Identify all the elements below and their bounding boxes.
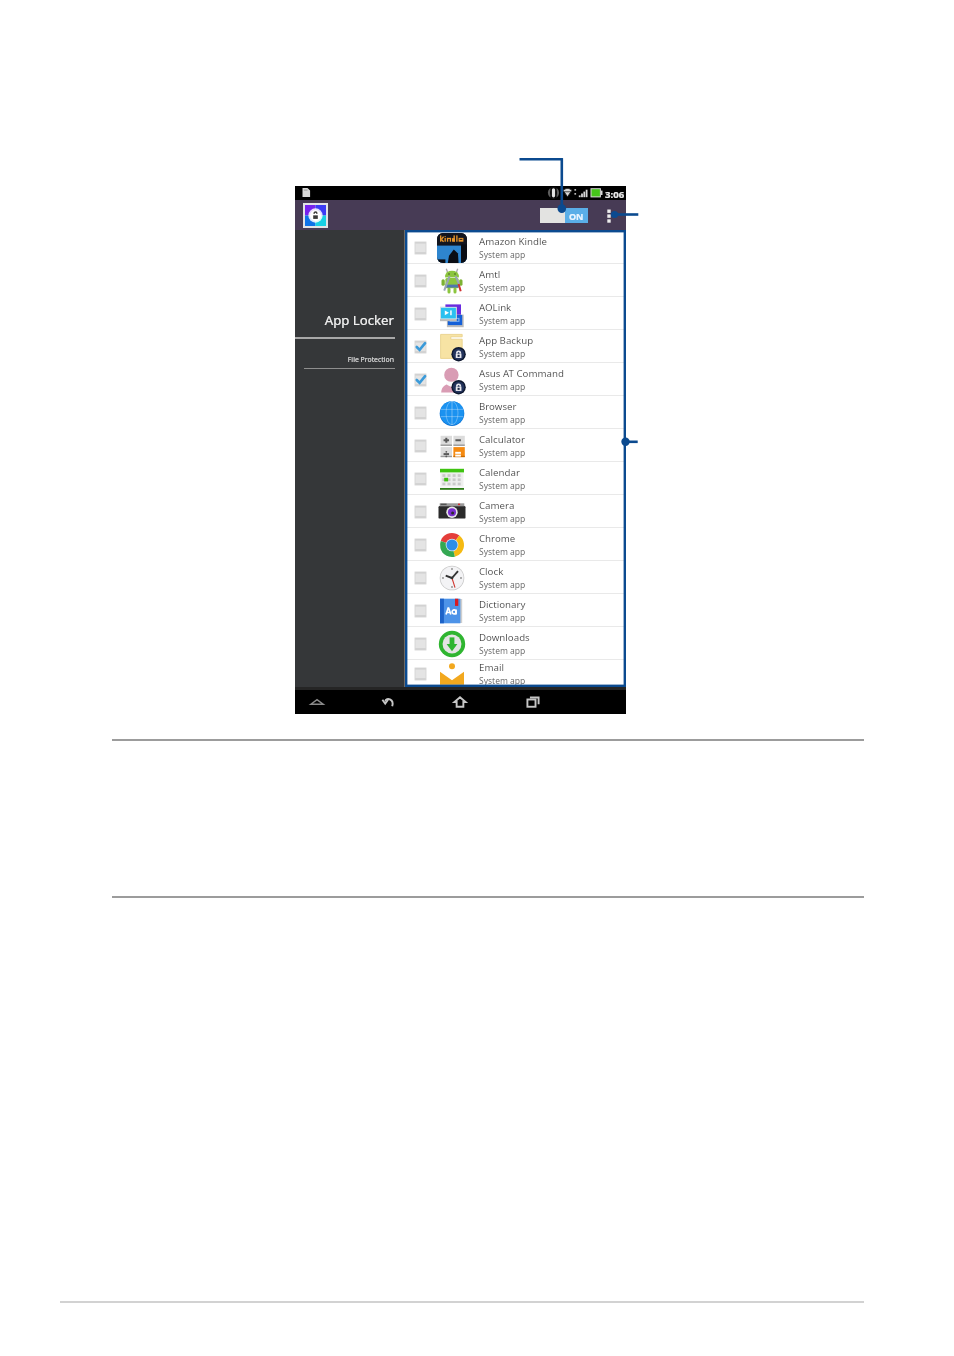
button[interactable]: AOLink: [405, 297, 626, 330]
staticText: System app: [479, 381, 526, 393]
button[interactable]: Downloads: [405, 627, 626, 660]
staticText: System app: [479, 675, 526, 687]
button[interactable]: Clock: [405, 561, 626, 594]
button[interactable]: More options: [599, 200, 619, 230]
staticText: Camera: [479, 499, 515, 512]
button[interactable]: Calculator: [405, 429, 626, 462]
staticText: Dictionary: [479, 598, 526, 611]
staticText: Clock: [479, 565, 504, 578]
button[interactable]: Toggle App Locker: [540, 208, 588, 223]
staticText: System app: [479, 513, 526, 525]
button[interactable]: Recent apps: [520, 690, 546, 714]
staticText: Calendar: [479, 466, 520, 479]
button[interactable]: Amtl: [405, 264, 626, 297]
button[interactable]: File Protection: [295, 346, 405, 370]
staticText: Chrome: [479, 532, 516, 545]
button[interactable]: App Locker: [295, 302, 405, 339]
button[interactable]: Hide navigation: [304, 690, 330, 714]
staticText: ON: [569, 210, 584, 222]
staticText: System app: [479, 282, 526, 294]
button[interactable]: Browser: [405, 396, 626, 429]
staticText: System app: [479, 315, 526, 327]
staticText: System app: [479, 645, 526, 657]
staticText: System app: [479, 579, 526, 591]
button[interactable]: Camera: [405, 495, 626, 528]
button[interactable]: App Locker: [305, 205, 326, 226]
staticText: 3:06: [605, 188, 625, 201]
staticText: System app: [479, 447, 526, 459]
button[interactable]: Back: [375, 690, 401, 714]
button[interactable]: Amazon Kindle: [405, 231, 626, 264]
staticText: Browser: [479, 400, 517, 413]
staticText: Amazon Kindle: [479, 235, 548, 248]
button[interactable]: Email: [405, 660, 626, 688]
staticText: System app: [479, 546, 526, 558]
staticText: Email: [479, 661, 504, 674]
staticText: File Protection: [347, 355, 394, 364]
button[interactable]: Asus AT Command: [405, 363, 626, 396]
button[interactable]: Calendar: [405, 462, 626, 495]
staticText: App Locker: [324, 311, 394, 329]
staticText: Asus AT Command: [479, 367, 564, 380]
staticText: Amtl: [479, 268, 501, 281]
button[interactable]: Dictionary: [405, 594, 626, 627]
staticText: AOLink: [479, 301, 512, 314]
staticText: System app: [479, 480, 526, 492]
button[interactable]: Chrome: [405, 528, 626, 561]
staticText: System app: [479, 612, 526, 624]
button[interactable]: App Backup: [405, 330, 626, 363]
button[interactable]: Home: [447, 690, 473, 714]
staticText: Downloads: [479, 631, 530, 644]
staticText: System app: [479, 249, 526, 261]
staticText: App Backup: [479, 334, 534, 347]
staticText: System app: [479, 348, 526, 360]
staticText: System app: [479, 414, 526, 426]
staticText: Calculator: [479, 433, 525, 446]
